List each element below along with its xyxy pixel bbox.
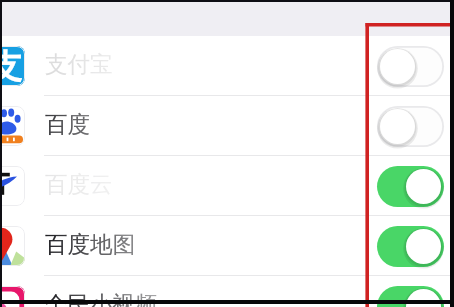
staticText: 百度 [45, 110, 90, 138]
staticText: 百度地图 [45, 230, 135, 258]
button[interactable]: 支 [0, 36, 454, 96]
button[interactable]: Permission off [377, 46, 444, 87]
button[interactable]: 百度地图 [0, 216, 454, 276]
button[interactable]: Permission on [377, 226, 444, 267]
button[interactable]: 全民小视频 [0, 276, 454, 307]
staticText: 支 [0, 46, 22, 86]
staticText: 支付宝 [45, 50, 113, 78]
staticText: 百度云 [45, 170, 113, 198]
button[interactable]: 百度云 [0, 156, 454, 216]
button[interactable]: Permission on [377, 166, 444, 207]
staticText: 全民小视频 [45, 290, 158, 307]
button[interactable]: Permission on [377, 286, 444, 307]
button[interactable]: 百度 [0, 96, 454, 156]
button[interactable]: Permission off [377, 106, 444, 147]
